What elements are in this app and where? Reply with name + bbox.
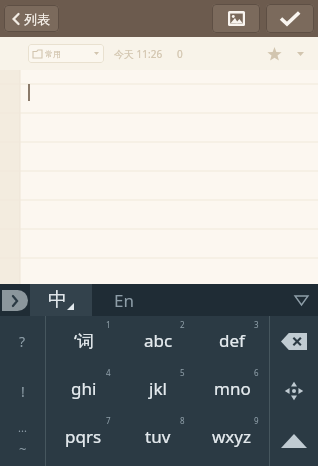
staticText: 列表 xyxy=(24,11,50,27)
staticText: jkl xyxy=(149,377,167,400)
staticText: 8 xyxy=(180,415,185,426)
button[interactable]: Insert image xyxy=(212,4,260,33)
button[interactable]: Done xyxy=(266,4,314,33)
staticText: ~ xyxy=(19,440,27,458)
staticText: En xyxy=(114,289,134,312)
button[interactable]: pqrs xyxy=(46,412,121,460)
button[interactable]: 常用 xyxy=(28,44,104,63)
staticText: 2 xyxy=(180,319,185,330)
button[interactable]: More options xyxy=(290,44,310,64)
staticText: tuv xyxy=(145,425,171,448)
button[interactable]: Hide keyboard xyxy=(284,284,318,316)
staticText: def xyxy=(219,329,245,352)
button[interactable]: Shift xyxy=(270,416,318,466)
staticText: 常用 xyxy=(45,49,61,59)
button[interactable]: wxyz xyxy=(195,412,269,460)
button[interactable]: ? xyxy=(0,316,45,366)
button[interactable]: ... xyxy=(0,416,45,466)
staticText: 0 xyxy=(177,47,183,61)
staticText: 中 xyxy=(48,288,67,312)
button[interactable]: En xyxy=(92,284,284,316)
staticText: pqrs xyxy=(65,425,102,448)
button[interactable]: ‘词 xyxy=(46,316,121,364)
staticText: ‘词 xyxy=(74,329,94,352)
button[interactable]: mno xyxy=(195,364,269,412)
button[interactable]: Backspace xyxy=(270,316,318,366)
staticText: 5 xyxy=(180,367,185,378)
staticText: 9 xyxy=(254,415,259,426)
staticText: wxyz xyxy=(212,425,252,448)
staticText: 3 xyxy=(254,319,259,330)
button[interactable]: def xyxy=(195,316,269,364)
button[interactable]: abc xyxy=(121,316,195,364)
staticText: ! xyxy=(21,382,25,401)
button[interactable]: Move cursor xyxy=(270,366,318,416)
button[interactable]: ! xyxy=(0,366,45,416)
staticText: ghi xyxy=(71,377,97,400)
staticText: 4 xyxy=(106,367,111,378)
staticText: 今天 11:26 xyxy=(114,47,163,61)
staticText: ? xyxy=(19,332,26,351)
staticText: 6 xyxy=(254,367,259,378)
staticText: mno xyxy=(214,377,251,400)
button[interactable]: tuv xyxy=(121,412,195,460)
button[interactable]: ghi xyxy=(46,364,121,412)
button[interactable]: 列表 xyxy=(4,5,59,32)
button[interactable]: jkl xyxy=(121,364,195,412)
staticText: 1 xyxy=(106,319,111,330)
button[interactable]: Expand toolbar xyxy=(0,284,30,316)
staticText: abc xyxy=(144,329,173,352)
staticText: 7 xyxy=(106,415,111,426)
button[interactable]: 中 xyxy=(30,284,92,316)
button[interactable]: Favourite xyxy=(262,42,286,66)
staticText: ... xyxy=(18,420,27,435)
